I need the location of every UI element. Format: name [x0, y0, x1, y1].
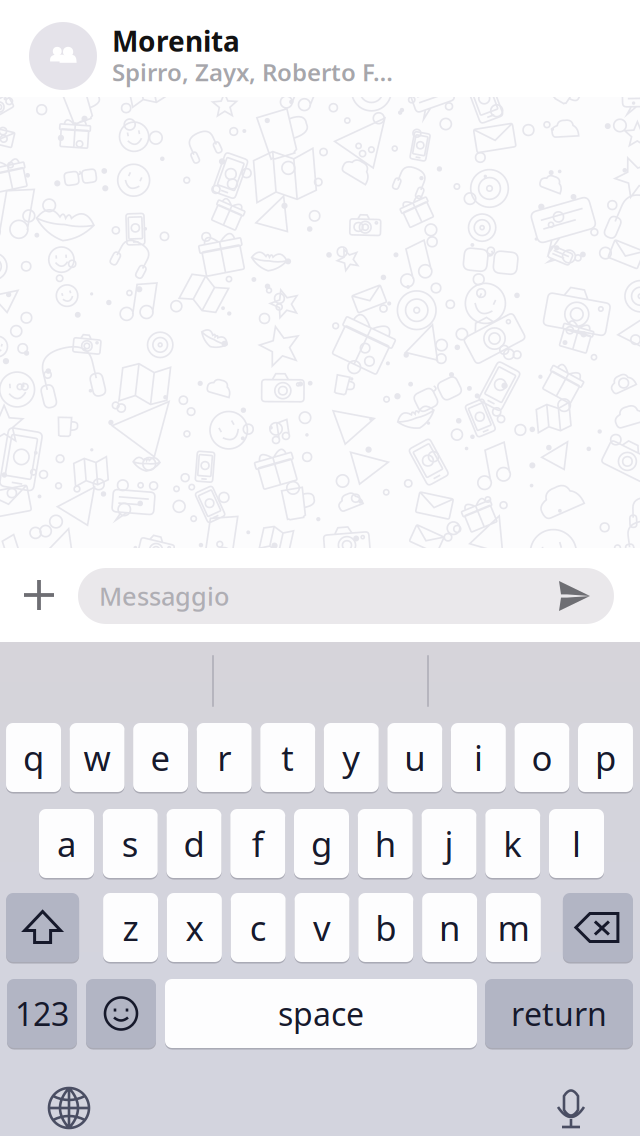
button[interactable]: z: [103, 891, 158, 963]
staticText: Messaggio: [99, 579, 229, 613]
staticText: space: [278, 992, 364, 1035]
button[interactable]: m: [486, 891, 541, 963]
button[interactable]: d: [166, 807, 221, 879]
button[interactable]: Backspace: [563, 891, 633, 963]
button[interactable]: a: [39, 807, 94, 879]
button[interactable]: r: [197, 721, 252, 793]
button[interactable]: Emoji: [86, 977, 156, 1049]
button[interactable]: c: [231, 891, 286, 963]
button[interactable]: e: [133, 721, 188, 793]
button[interactable]: i: [451, 721, 506, 793]
button[interactable]: y: [324, 721, 379, 793]
staticText: z: [123, 904, 139, 950]
button[interactable]: x: [167, 891, 222, 963]
button[interactable]: q: [6, 721, 61, 793]
staticText: c: [250, 904, 267, 950]
button[interactable]: o: [514, 721, 569, 793]
button[interactable]: Shift: [6, 891, 79, 963]
staticText: l: [572, 820, 581, 866]
staticText: m: [497, 904, 529, 950]
staticText: y: [342, 734, 360, 780]
staticText: f: [252, 820, 264, 866]
button[interactable]: b: [358, 891, 413, 963]
staticText: b: [375, 904, 396, 950]
staticText: e: [151, 734, 171, 780]
button[interactable]: j: [421, 807, 476, 879]
staticText: g: [311, 820, 332, 866]
staticText: v: [313, 904, 331, 950]
button[interactable]: u: [387, 721, 442, 793]
staticText: w: [84, 734, 111, 780]
staticText: a: [57, 820, 76, 866]
staticText: o: [531, 734, 552, 780]
staticText: k: [503, 820, 522, 866]
staticText: return: [511, 992, 607, 1035]
staticText: h: [375, 820, 396, 866]
button[interactable]: Attach: [24, 580, 54, 610]
button[interactable]: Dictate: [558, 1086, 585, 1129]
button[interactable]: 123: [7, 977, 77, 1049]
button[interactable]: Change keyboard: [48, 1087, 90, 1129]
staticText: d: [183, 820, 204, 866]
staticText: 123: [15, 992, 69, 1035]
button[interactable]: s: [103, 807, 158, 879]
staticText: q: [23, 734, 44, 780]
staticText: t: [281, 734, 294, 780]
button[interactable]: v: [294, 891, 349, 963]
staticText: x: [185, 904, 203, 950]
button[interactable]: space: [165, 977, 477, 1049]
button[interactable]: return: [485, 977, 633, 1049]
button[interactable]: k: [485, 807, 540, 879]
button[interactable]: g: [294, 807, 349, 879]
staticText: i: [474, 734, 483, 780]
staticText: u: [404, 734, 425, 780]
staticText: Spirro, Zayx, Roberto F…: [112, 56, 393, 88]
button[interactable]: h: [358, 807, 413, 879]
staticText: p: [595, 734, 616, 780]
staticText: j: [444, 820, 453, 866]
button[interactable]: p: [578, 721, 633, 793]
button[interactable]: n: [422, 891, 477, 963]
staticText: r: [217, 734, 231, 780]
staticText: Morenita: [112, 22, 240, 60]
staticText: s: [122, 820, 139, 866]
staticText: n: [439, 904, 460, 950]
button[interactable]: t: [260, 721, 315, 793]
button[interactable]: Send: [559, 581, 590, 611]
button[interactable]: l: [549, 807, 604, 879]
button[interactable]: f: [230, 807, 285, 879]
button[interactable]: w: [70, 721, 125, 793]
